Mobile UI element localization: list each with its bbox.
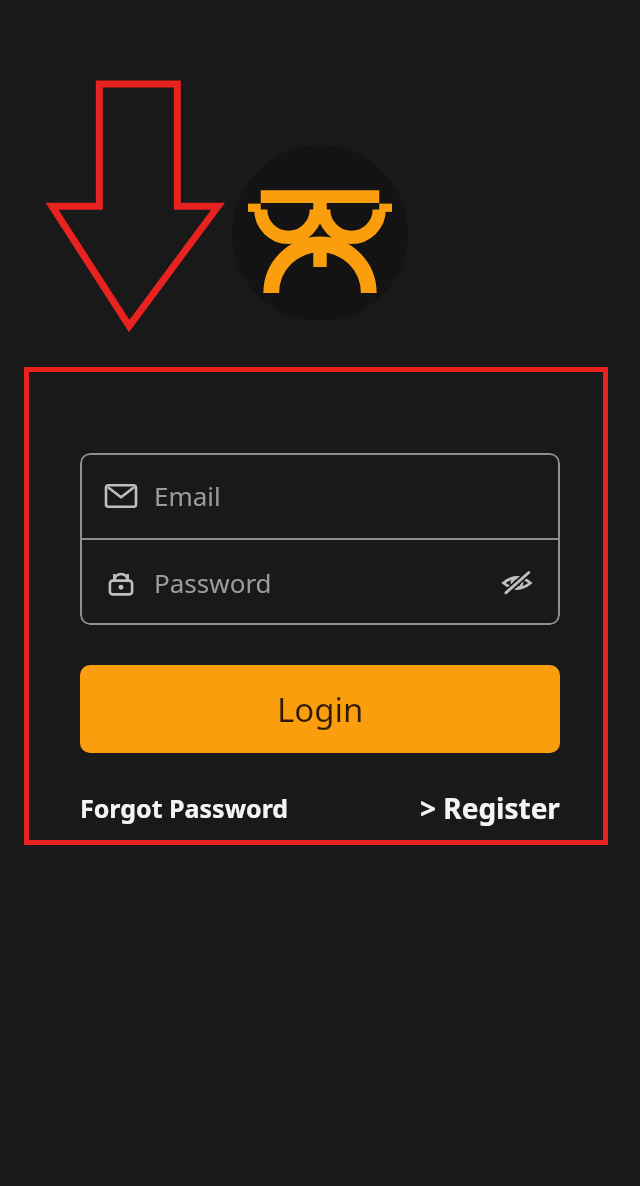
staticText: Login — [277, 687, 364, 732]
button[interactable]: Password — [80, 540, 560, 625]
staticText: Email — [154, 478, 221, 513]
button[interactable]: Login — [80, 665, 560, 753]
button[interactable]: Show password — [496, 562, 538, 604]
button[interactable]: > Register — [420, 785, 560, 831]
button[interactable]: Forgot Password — [80, 787, 289, 829]
button[interactable]: Email — [80, 453, 560, 538]
staticText: Forgot Password — [80, 791, 289, 825]
staticText: > Register — [420, 789, 560, 827]
staticText: Password — [154, 565, 272, 600]
